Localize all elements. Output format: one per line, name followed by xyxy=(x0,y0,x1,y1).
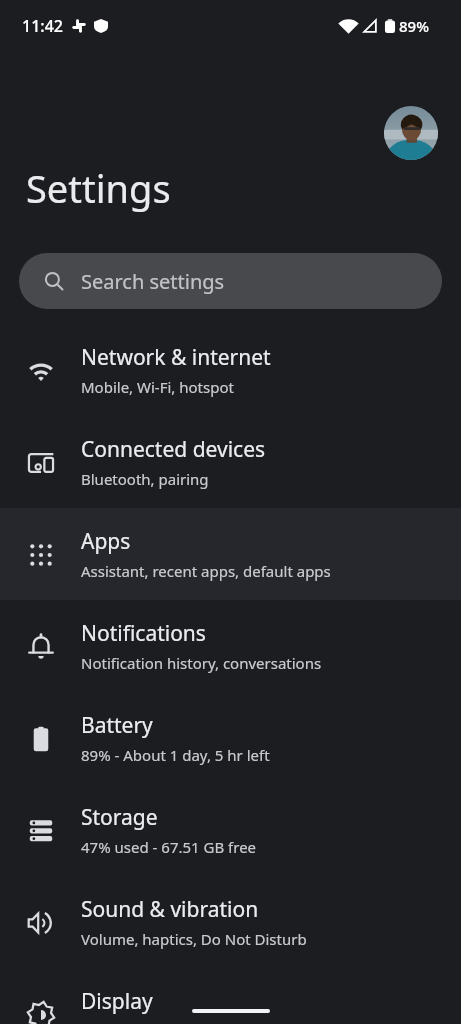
button[interactable]: Network & internet xyxy=(0,324,461,416)
button[interactable]: Battery xyxy=(0,692,461,784)
staticText: Storage xyxy=(81,803,158,832)
staticText: Battery xyxy=(81,711,153,740)
staticText: Sound & vibration xyxy=(81,895,259,924)
staticText: Mobile, Wi-Fi, hotspot xyxy=(81,377,234,397)
staticText: Assistant, recent apps, default apps xyxy=(81,561,331,581)
staticText: Search settings xyxy=(81,268,225,295)
button[interactable]: Display xyxy=(0,968,461,1024)
staticText: 47% used - 67.51 GB free xyxy=(81,837,257,857)
staticText: 89% xyxy=(399,16,429,36)
staticText: Notification history, conversations xyxy=(81,653,322,673)
staticText: Apps xyxy=(81,527,131,556)
button[interactable]: Apps xyxy=(0,508,461,600)
button[interactable]: Sound & vibration xyxy=(0,876,461,968)
staticText: 11:42 xyxy=(22,15,63,37)
staticText: Bluetooth, pairing xyxy=(81,469,209,489)
button[interactable]: Storage xyxy=(0,784,461,876)
staticText: Notifications xyxy=(81,619,206,648)
staticText: Connected devices xyxy=(81,435,266,464)
staticText: Settings xyxy=(26,162,171,214)
button[interactable]: Search settings xyxy=(19,253,442,309)
button[interactable]: Notifications xyxy=(0,600,461,692)
staticText: Volume, haptics, Do Not Disturb xyxy=(81,929,307,949)
staticText: Display xyxy=(81,987,153,1016)
staticText: 89% - About 1 day, 5 hr left xyxy=(81,745,270,765)
button[interactable] xyxy=(384,106,438,160)
staticText: Network & internet xyxy=(81,343,271,372)
button[interactable]: Connected devices xyxy=(0,416,461,508)
